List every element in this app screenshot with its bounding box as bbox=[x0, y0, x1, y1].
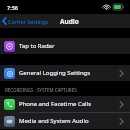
button[interactable]: Tap to Radar bbox=[0, 38, 130, 54]
button[interactable]: Media and System Audio bbox=[0, 113, 130, 129]
button[interactable]: Phone and Facetime Calls bbox=[0, 96, 130, 112]
staticText: Carrier Settings bbox=[8, 18, 49, 25]
staticText: 7:56 bbox=[7, 4, 18, 11]
staticText: Audio bbox=[60, 17, 79, 26]
staticText: Tap to Radar bbox=[19, 42, 125, 50]
staticText: RECORDINGS : SYSTEM CAPTURES bbox=[5, 87, 77, 93]
button[interactable]: Carrier Settings bbox=[0, 17, 51, 25]
button[interactable]: General Logging Settings bbox=[0, 65, 130, 81]
staticText: Phone and Facetime Calls bbox=[19, 100, 115, 108]
staticText: General Logging Settings bbox=[19, 69, 115, 77]
staticText: Media and System Audio bbox=[19, 117, 115, 125]
